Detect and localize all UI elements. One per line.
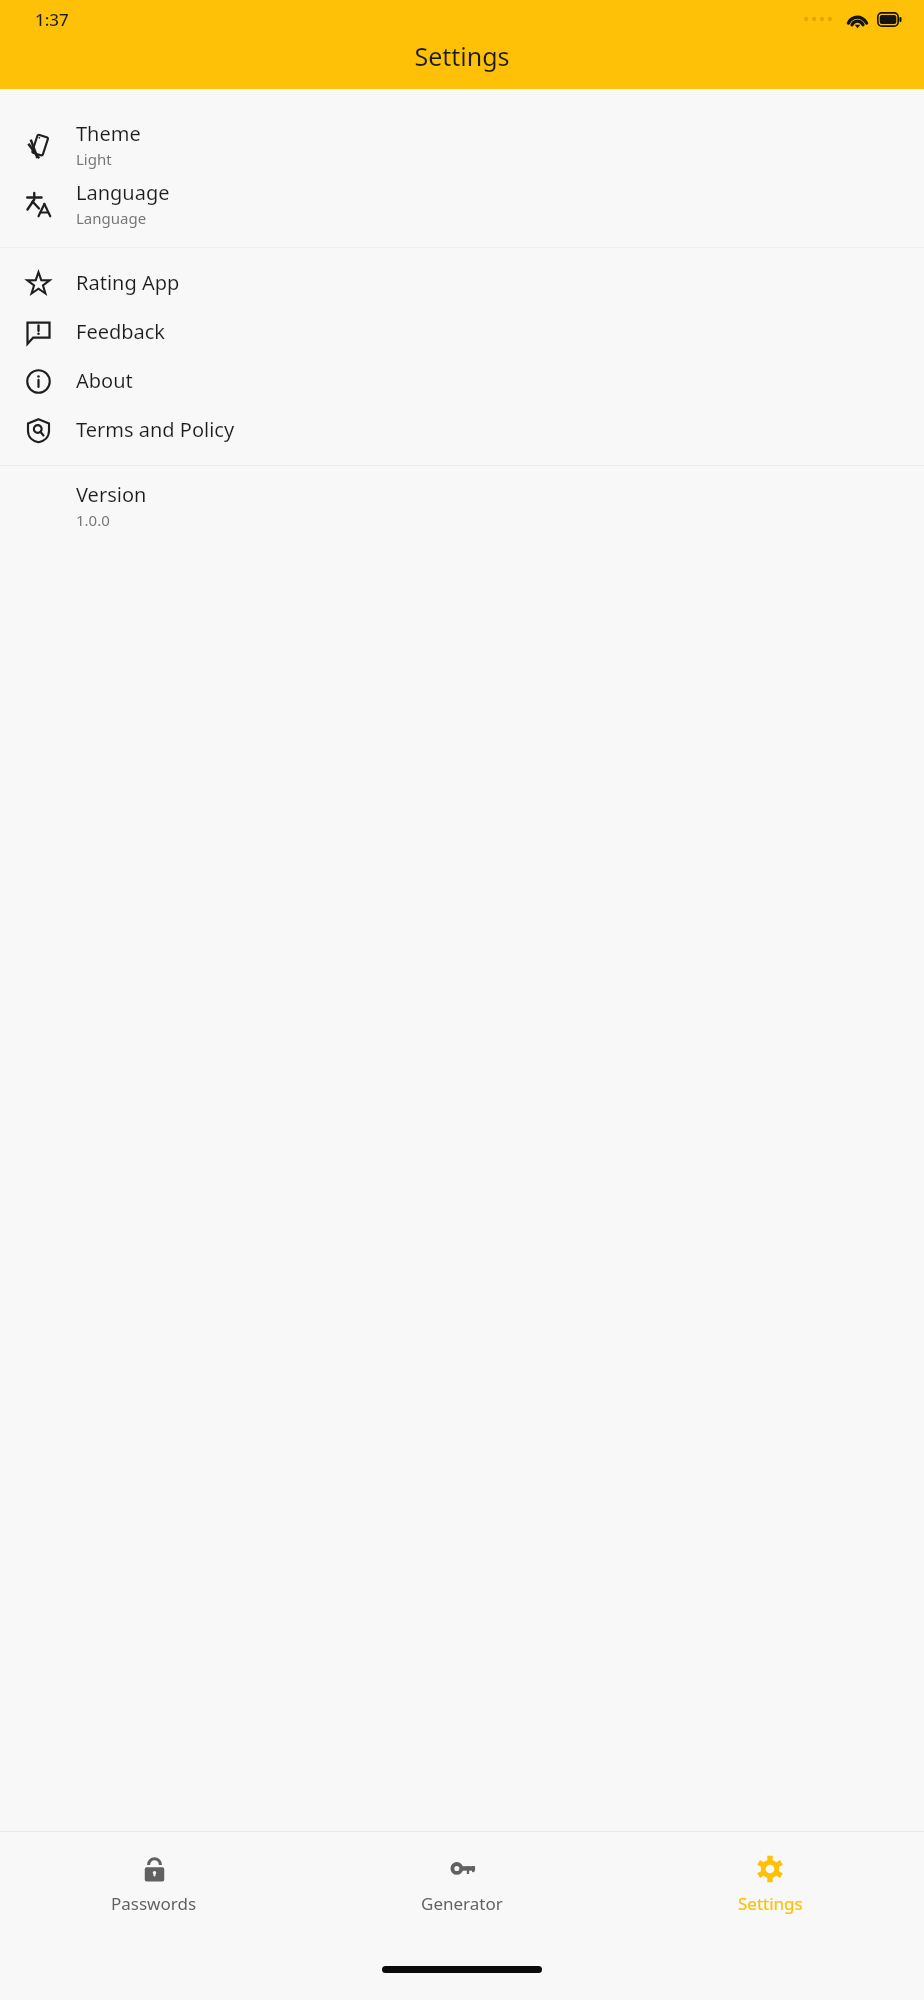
staticText: Rating App	[76, 269, 180, 296]
staticText: Settings	[0, 39, 924, 73]
staticText: Version	[76, 481, 147, 508]
staticText: 1.0.0	[76, 510, 110, 530]
button[interactable]: Terms and Policy	[0, 405, 924, 454]
staticText: Light	[76, 149, 112, 169]
button[interactable]: Language	[0, 174, 924, 233]
staticText: Language	[76, 179, 170, 206]
staticText: Language	[76, 208, 147, 228]
staticText: Feedback	[76, 318, 166, 345]
button[interactable]: Settings	[616, 1832, 924, 1938]
staticText: Theme	[76, 120, 141, 147]
button[interactable]: Passwords	[0, 1832, 308, 1938]
staticText: Passwords	[111, 1892, 197, 1915]
button[interactable]: Theme	[0, 115, 924, 174]
button[interactable]: Feedback	[0, 307, 924, 356]
staticText: About	[76, 367, 133, 394]
button[interactable]: Rating App	[0, 258, 924, 307]
button[interactable]: Generator	[308, 1832, 616, 1938]
staticText: Terms and Policy	[76, 416, 235, 443]
staticText: 1:37	[35, 8, 69, 31]
button[interactable]: About	[0, 356, 924, 405]
staticText: Generator	[421, 1892, 503, 1915]
staticText: Settings	[738, 1892, 803, 1915]
